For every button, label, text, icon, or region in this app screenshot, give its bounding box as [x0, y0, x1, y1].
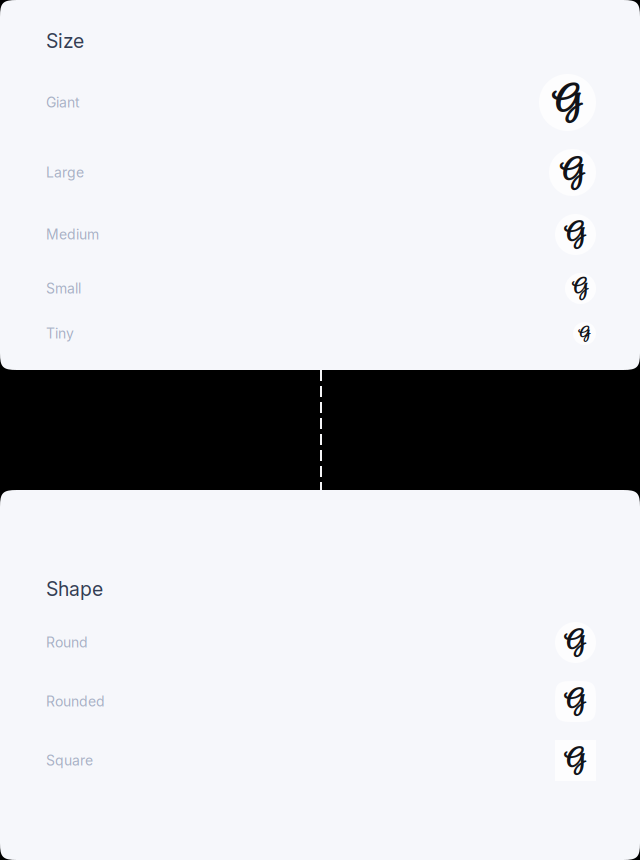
staticText: G [565, 213, 585, 256]
staticText: G [554, 73, 581, 132]
button[interactable]: Large [46, 149, 596, 196]
staticText: Shape [46, 577, 103, 601]
staticText: Size [46, 29, 84, 53]
button[interactable]: Round [46, 622, 596, 663]
button[interactable]: Small [46, 273, 596, 304]
staticText: Giant [46, 94, 80, 111]
button[interactable]: Square [46, 740, 596, 781]
staticText: G [579, 321, 590, 345]
button[interactable]: Giant [46, 74, 596, 131]
staticText: Small [46, 280, 81, 297]
staticText: Large [46, 164, 84, 181]
staticText: Square [46, 752, 93, 769]
staticText: G [565, 739, 585, 782]
staticText: Tiny [46, 325, 74, 342]
staticText: G [573, 272, 588, 305]
staticText: G [561, 148, 583, 197]
staticText: Rounded [46, 693, 105, 710]
staticText: G [565, 680, 585, 723]
staticText: Round [46, 634, 88, 651]
button[interactable]: Rounded [46, 681, 596, 722]
staticText: Medium [46, 226, 99, 243]
button[interactable]: Medium [46, 214, 596, 255]
button[interactable]: Tiny [46, 322, 596, 345]
staticText: G [565, 621, 585, 664]
